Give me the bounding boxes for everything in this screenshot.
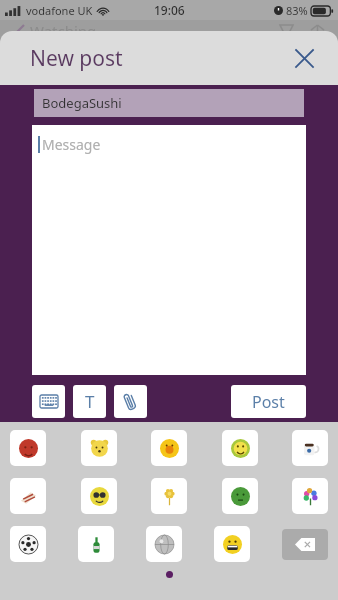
staticText: BodegaSushi	[42, 94, 122, 112]
staticText: Watching	[30, 21, 97, 41]
button[interactable]: Emoji 12	[78, 526, 114, 562]
button[interactable]: Emoji 14	[214, 526, 250, 562]
button[interactable]: Emoji 3	[151, 430, 187, 466]
button[interactable]: Emoji 9	[222, 478, 258, 514]
button[interactable]: Post	[231, 385, 306, 418]
button[interactable]: Emoji 13	[146, 526, 182, 562]
staticText: Post	[252, 391, 285, 413]
button[interactable]: Text format	[73, 385, 106, 418]
button[interactable]: BodegaSushi	[34, 89, 304, 117]
button[interactable]: Backspace	[282, 529, 328, 560]
button[interactable]: Attach file	[114, 385, 147, 418]
button[interactable]: Emoji 11	[10, 526, 46, 562]
button[interactable]: Emoji 10	[292, 478, 328, 514]
staticText: vodafone UK	[26, 3, 93, 18]
button[interactable]: Emoji 2	[81, 430, 117, 466]
button[interactable]: Close	[288, 42, 320, 74]
button[interactable]: Message	[32, 125, 306, 375]
button[interactable]: Emoji 4	[222, 430, 258, 466]
button[interactable]: Keyboard	[32, 385, 65, 418]
button[interactable]: Emoji 5	[292, 430, 328, 466]
button[interactable]: Emoji 6	[10, 478, 46, 514]
staticText: New post	[30, 44, 123, 73]
button[interactable]: Emoji 8	[151, 478, 187, 514]
button[interactable]: Emoji 1	[10, 430, 46, 466]
staticText: Message	[42, 135, 101, 154]
staticText: T	[85, 390, 95, 413]
staticText: 19:06	[154, 2, 185, 18]
button[interactable]: Emoji 7	[81, 478, 117, 514]
staticText: 83%	[286, 3, 308, 18]
